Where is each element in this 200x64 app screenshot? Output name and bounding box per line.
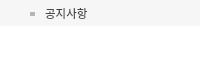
button[interactable]: 공지사항	[0, 0, 200, 26]
staticText: 공지사항	[45, 5, 88, 22]
